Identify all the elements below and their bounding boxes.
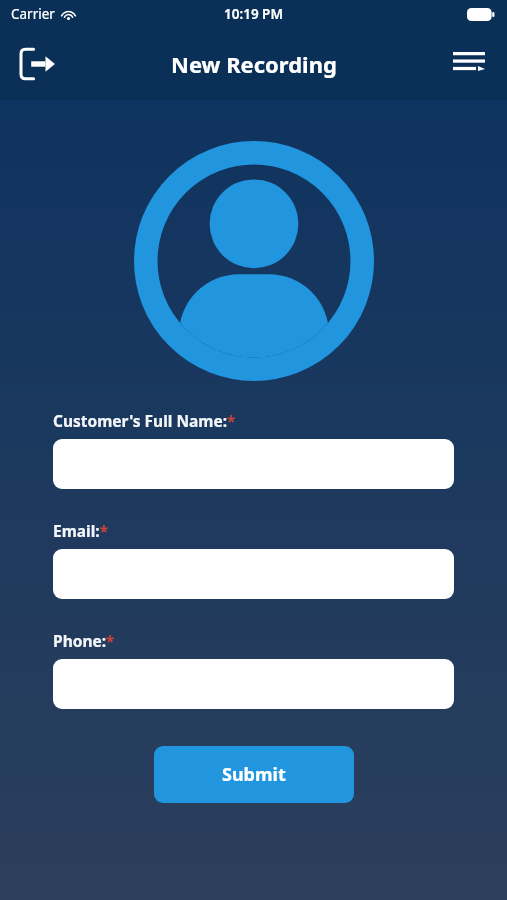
button[interactable] (53, 549, 454, 599)
button[interactable]: Log out (14, 40, 62, 88)
button[interactable] (53, 439, 454, 489)
staticText: Submit (222, 762, 286, 787)
button[interactable]: Submit (154, 746, 354, 803)
staticText: 10:19 PM (224, 5, 283, 23)
button[interactable]: Recordings list (445, 40, 493, 88)
staticText: Carrier (11, 5, 55, 23)
staticText: Phone:* (53, 630, 115, 651)
staticText: Email:* (53, 520, 109, 541)
staticText: Customer's Full Name:* (53, 410, 236, 431)
staticText: New Recording (171, 49, 337, 79)
button[interactable] (53, 659, 454, 709)
